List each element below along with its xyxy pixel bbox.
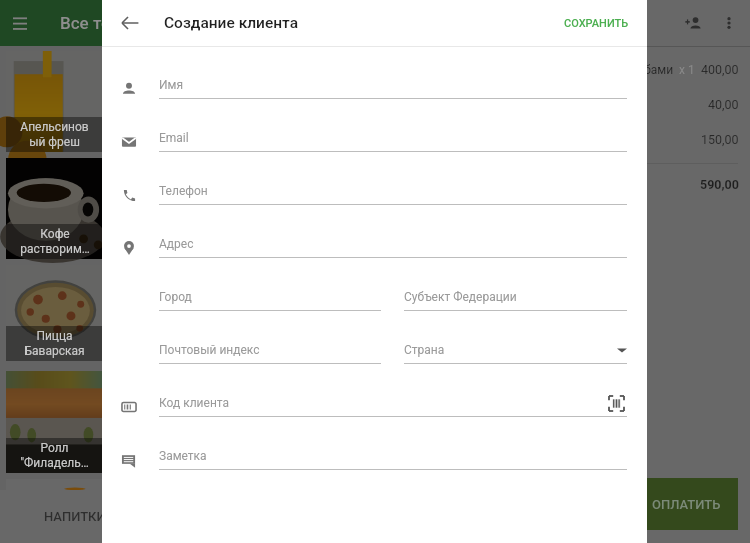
staticText: 40,00 [708,97,739,112]
staticText: Субъект Федерации [404,290,517,304]
staticText: Имя [159,78,184,92]
staticText: Пицца с грибами [577,63,674,77]
button[interactable]: Код клиента [102,390,647,443]
button[interactable]: Добавить клиента [675,5,711,41]
staticText: Город [159,290,192,304]
staticText: Доставка [577,98,632,112]
button[interactable]: Субъект Федерации [404,284,627,311]
staticText: Ролл "Филадель… [20,441,89,470]
button[interactable]: Пицца с грибами [577,62,739,77]
button[interactable]: Город [159,284,381,311]
staticText: НАПИТКИ [44,509,106,524]
button[interactable]: ОПЛАТИТЬ [634,478,738,530]
staticText: СОХРАНИТЬ [564,17,629,30]
staticText: Адрес [159,237,194,251]
button[interactable]: Телефон [102,178,647,231]
staticText: x 1 [679,63,695,77]
staticText: Код клиента [159,396,230,410]
button[interactable]: СОХРАНИТЬ [554,9,639,38]
button[interactable]: Апельсинов ый фреш [6,51,103,152]
button[interactable]: Ещё [711,5,747,41]
button[interactable]: Почтовый индекс [159,337,381,364]
button[interactable]: Страна [404,337,627,364]
button[interactable]: Меню [7,10,33,36]
button[interactable]: Ролл "Филадель… [6,371,103,473]
staticText: Email [159,131,189,145]
staticText: Кофе растворим… [20,227,90,256]
staticText: Пицца Баварская [24,329,85,358]
button[interactable]: Имя [102,72,647,125]
button[interactable] [6,479,103,490]
staticText: 590,00 [700,177,739,192]
button[interactable]: Сканировать штрихкод [605,392,627,414]
staticText: Создание клиента [164,14,299,32]
staticText: 400,00 [701,62,739,77]
staticText: Телефон [159,184,208,198]
button[interactable]: Адрес [102,231,647,284]
staticText: ОПЛАТИТЬ [652,497,721,512]
staticText: Заметка [159,449,207,463]
button[interactable]: Ролл [577,132,739,147]
staticText: Страна [404,343,445,357]
button[interactable]: НАПИТКИ [0,490,150,543]
staticText: 150,00 [701,132,739,147]
button[interactable]: Пицца Баварская [6,265,103,361]
staticText: Все товары [60,13,153,33]
button[interactable]: Email [102,125,647,178]
button[interactable]: Заметка [102,443,647,496]
button[interactable]: Доставка [577,97,739,112]
staticText: Почтовый индекс [159,343,260,357]
button[interactable]: Назад [114,7,146,39]
staticText: Апельсинов ый фреш [20,120,89,149]
button[interactable]: Кофе растворим… [6,158,103,259]
